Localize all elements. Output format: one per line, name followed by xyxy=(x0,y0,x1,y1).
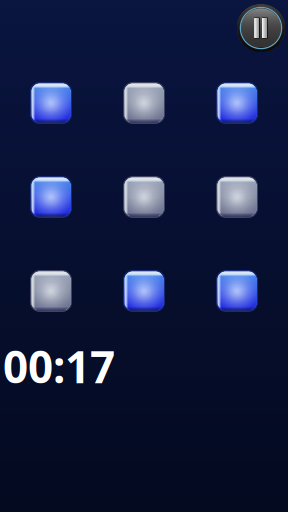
button[interactable]: Pause xyxy=(236,3,286,53)
button[interactable]: Tile xyxy=(123,176,165,218)
button[interactable]: Tile xyxy=(30,82,72,124)
button[interactable]: Tile xyxy=(123,270,165,312)
button[interactable]: Tile xyxy=(123,82,165,124)
button[interactable]: Tile xyxy=(216,82,258,124)
button[interactable]: Tile xyxy=(216,176,258,218)
button[interactable]: Tile xyxy=(30,270,72,312)
button[interactable]: Tile xyxy=(30,176,72,218)
button[interactable]: Tile xyxy=(216,270,258,312)
staticText: 00:17 xyxy=(3,337,115,395)
